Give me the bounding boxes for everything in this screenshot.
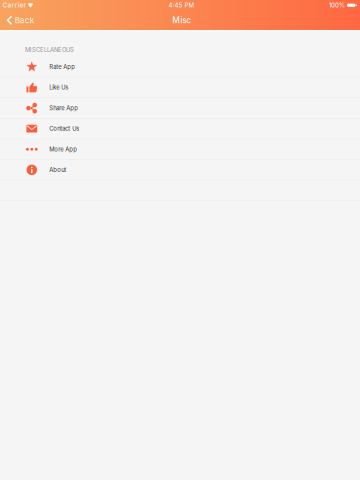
staticText: About xyxy=(49,166,66,173)
button[interactable]: Like Us xyxy=(0,77,360,98)
staticText: Back xyxy=(15,15,34,25)
button[interactable]: Rate App xyxy=(0,57,360,77)
button[interactable]: About xyxy=(0,160,360,180)
staticText: Misc xyxy=(172,15,191,25)
staticText: 4:45 PM xyxy=(169,2,194,9)
staticText: Rate App xyxy=(49,63,75,70)
staticText: Share App xyxy=(49,104,78,112)
button[interactable]: Share App xyxy=(0,98,360,119)
staticText: More App xyxy=(49,146,77,153)
staticText: 100% xyxy=(329,2,345,9)
staticText: Contact Us xyxy=(49,125,79,132)
button[interactable]: More App xyxy=(0,139,360,160)
button[interactable]: Contact Us xyxy=(0,119,360,139)
staticText: MISCELLANEOUS xyxy=(25,46,74,53)
staticText: Carrier xyxy=(2,1,25,9)
button[interactable]: Back xyxy=(0,10,40,30)
staticText: Like Us xyxy=(49,84,68,91)
